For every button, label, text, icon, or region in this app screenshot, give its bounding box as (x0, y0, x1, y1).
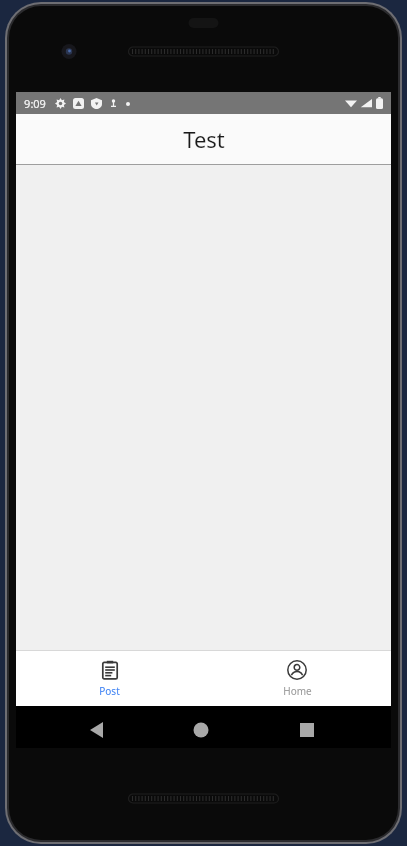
staticText: Home (283, 684, 312, 698)
button[interactable]: Post (16, 654, 203, 704)
button[interactable]: Home (203, 654, 391, 704)
staticText: Test (183, 124, 225, 154)
staticText: 9:09 (24, 96, 46, 111)
staticText: Post (99, 684, 120, 698)
